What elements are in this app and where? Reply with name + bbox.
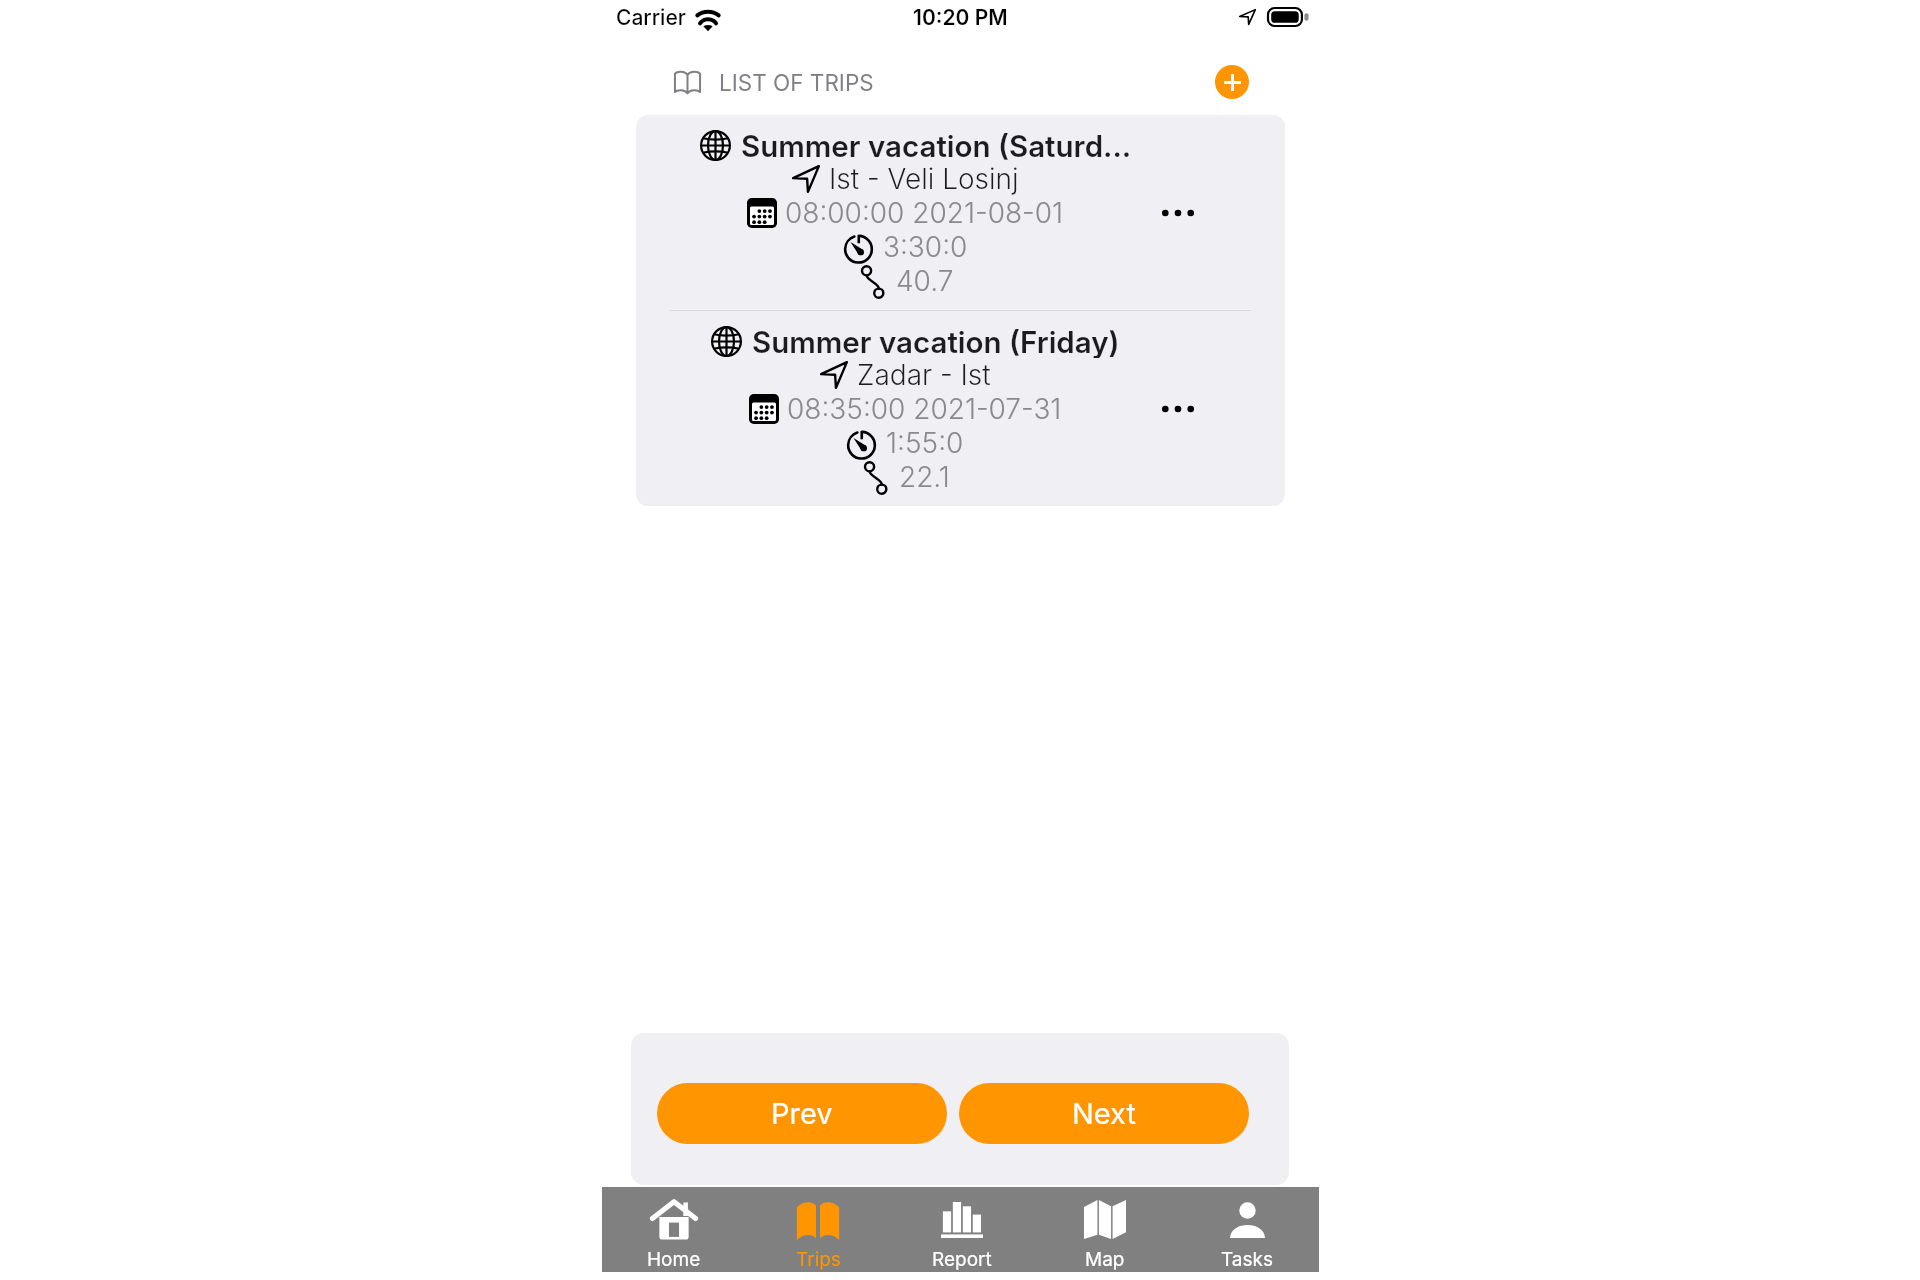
button[interactable]: Tasks: [1176, 1187, 1319, 1272]
staticText: 10:20 PM: [913, 5, 1008, 30]
staticText: 08:00:00 2021-08-01: [785, 196, 1064, 230]
staticText: Ist - Veli Losinj: [829, 162, 1019, 196]
button[interactable]: Map: [1033, 1187, 1176, 1272]
staticText: Summer vacation (Friday): [752, 324, 1120, 358]
staticText: 40.7: [896, 264, 954, 298]
staticText: Trips: [796, 1248, 841, 1271]
button[interactable]: More options: [1150, 185, 1206, 241]
staticText: Tasks: [1221, 1248, 1274, 1271]
button[interactable]: Summer vacation (Friday): [636, 311, 1285, 506]
staticText: Home: [647, 1248, 701, 1271]
button[interactable]: Prev: [657, 1083, 947, 1144]
staticText: Zadar - Ist: [857, 358, 991, 392]
staticText: 3:30:0: [883, 230, 968, 264]
staticText: Map: [1085, 1248, 1125, 1271]
button[interactable]: Add trip: [1215, 65, 1249, 99]
staticText: 1:55:0: [886, 426, 964, 460]
staticText: 22.1: [899, 460, 950, 494]
staticText: Carrier: [616, 5, 686, 30]
button[interactable]: Home: [602, 1187, 746, 1272]
button[interactable]: Trips: [746, 1187, 890, 1272]
staticText: 08:35:00 2021-07-31: [787, 392, 1062, 426]
staticText: Report: [932, 1248, 992, 1271]
button[interactable]: Summer vacation (Saturd...: [636, 115, 1285, 310]
staticText: Prev: [771, 1096, 833, 1131]
button[interactable]: Next: [959, 1083, 1249, 1144]
staticText: Next: [1072, 1096, 1136, 1131]
staticText: Summer vacation (Saturd...: [741, 128, 1132, 162]
button[interactable]: Report: [890, 1187, 1033, 1272]
button[interactable]: More options: [1150, 381, 1206, 437]
staticText: LIST OF TRIPS: [719, 69, 874, 96]
